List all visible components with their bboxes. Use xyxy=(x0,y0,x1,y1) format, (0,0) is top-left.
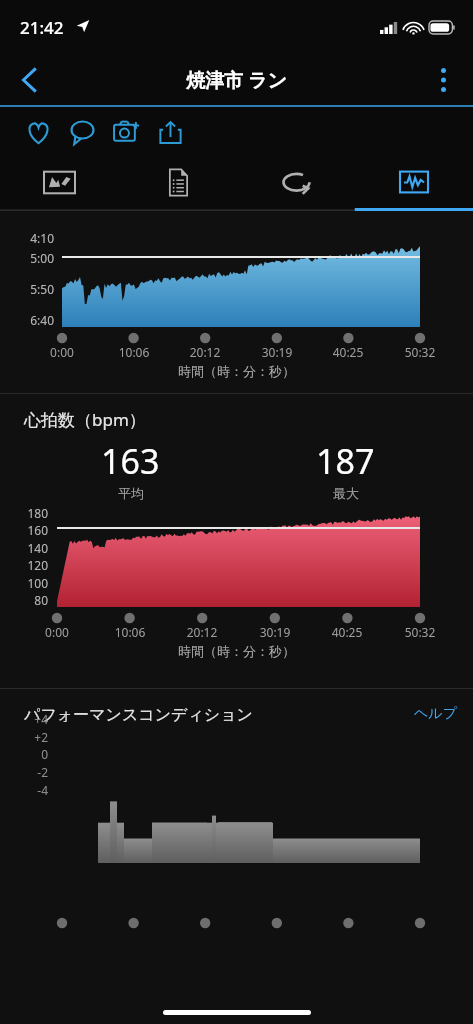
staticText: 10:06 xyxy=(104,344,164,360)
staticText: +2 xyxy=(18,729,48,745)
staticText: 100 xyxy=(14,575,48,591)
staticText: 40:25 xyxy=(318,344,378,360)
staticText: 20:12 xyxy=(172,624,232,640)
staticText: 0 xyxy=(18,746,48,762)
staticText: 時間（時：分：秒） xyxy=(178,643,295,659)
staticText: 120 xyxy=(14,557,48,573)
staticText: 心拍数（bpm） xyxy=(24,408,146,431)
staticText: 21:42 xyxy=(20,16,64,39)
staticText: 180 xyxy=(14,505,48,521)
staticText: 80 xyxy=(14,592,48,608)
staticText: 5:50 xyxy=(20,281,54,297)
button[interactable]: Comment xyxy=(60,110,104,154)
staticText: 平均 xyxy=(118,485,144,501)
button[interactable]: ヘルプ xyxy=(408,697,463,731)
button[interactable]: Charts xyxy=(355,157,473,207)
staticText: -2 xyxy=(18,764,48,780)
button[interactable]: Back xyxy=(6,57,52,103)
button[interactable]: Map xyxy=(0,157,119,207)
staticText: パフォーマンスコンディション xyxy=(24,705,253,725)
staticText: 30:19 xyxy=(247,344,307,360)
button[interactable]: Laps xyxy=(237,157,355,207)
staticText: 50:32 xyxy=(390,344,450,360)
staticText: 0:00 xyxy=(27,624,87,640)
button[interactable]: Add photo xyxy=(104,110,148,154)
staticText: 焼津市 ラン xyxy=(186,67,287,93)
staticText: 時間（時：分：秒） xyxy=(178,363,295,379)
staticText: 6:40 xyxy=(20,312,54,328)
staticText: ヘルプ xyxy=(414,705,457,723)
staticText: 140 xyxy=(14,540,48,556)
staticText: 40:25 xyxy=(317,624,377,640)
staticText: 4:10 xyxy=(20,230,54,246)
button[interactable]: Share xyxy=(148,110,192,154)
button[interactable]: Details xyxy=(119,157,237,207)
staticText: 160 xyxy=(14,522,48,538)
staticText: 50:32 xyxy=(390,624,450,640)
button[interactable]: More options xyxy=(421,58,465,102)
staticText: +4 xyxy=(18,711,48,727)
staticText: 最大 xyxy=(333,485,359,501)
staticText: -4 xyxy=(18,782,48,798)
staticText: 30:19 xyxy=(245,624,305,640)
staticText: 10:06 xyxy=(100,624,160,640)
staticText: 5:00 xyxy=(20,250,54,266)
staticText: 163 xyxy=(101,438,160,484)
staticText: 187 xyxy=(316,438,375,484)
staticText: 20:12 xyxy=(175,344,235,360)
staticText: 0:00 xyxy=(32,344,92,360)
button[interactable]: Like xyxy=(16,110,60,154)
